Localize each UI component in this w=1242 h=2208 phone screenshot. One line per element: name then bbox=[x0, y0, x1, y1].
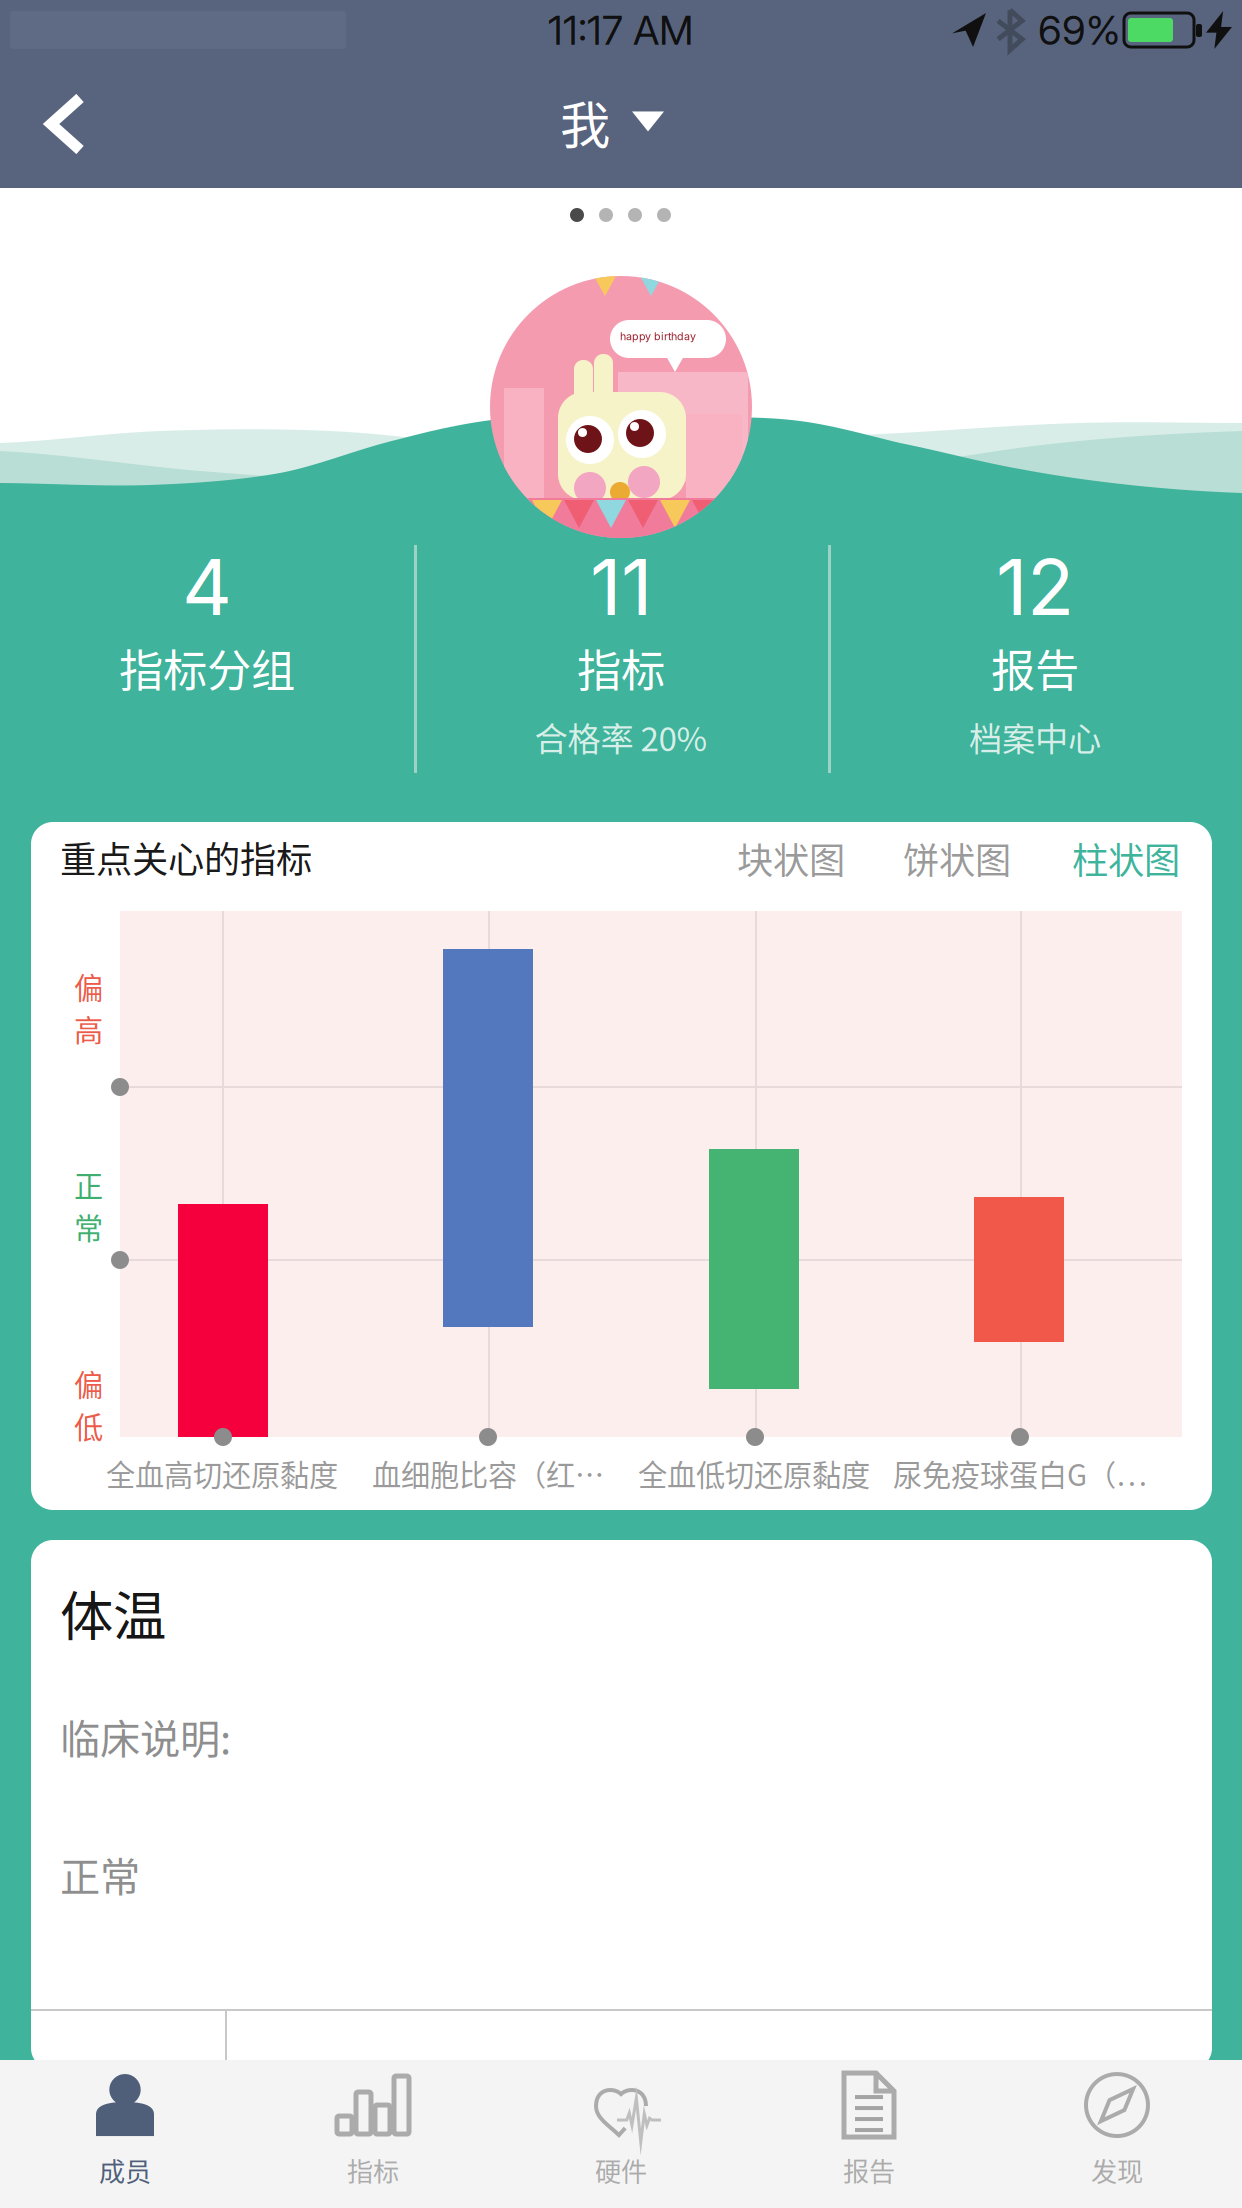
staticText: 全血高切还原黏度 bbox=[106, 1452, 338, 1494]
button[interactable]: 我 bbox=[544, 69, 680, 174]
staticText: 4 bbox=[182, 540, 232, 634]
staticText: 正 bbox=[74, 1163, 103, 1205]
button[interactable]: 成员 bbox=[1, 2068, 249, 2194]
staticText: 尿免疫球蛋白G（… bbox=[893, 1452, 1147, 1494]
staticText: 成员 bbox=[99, 2151, 151, 2189]
staticText: 正常 bbox=[60, 1845, 140, 1903]
staticText: 偏 bbox=[74, 1362, 103, 1404]
staticText: 我 bbox=[560, 85, 610, 158]
staticText: 常 bbox=[74, 1205, 103, 1248]
staticText: 发现 bbox=[1091, 2151, 1143, 2189]
staticText: 69% bbox=[1038, 6, 1120, 54]
button[interactable]: 柱状图 bbox=[1062, 822, 1190, 894]
staticText: 指标 bbox=[577, 636, 665, 700]
staticText: 临床说明: bbox=[60, 1707, 231, 1765]
button[interactable]: 硬件 bbox=[497, 2068, 745, 2194]
button[interactable]: 4 bbox=[0, 540, 414, 700]
staticText: 全血低切还原黏度 bbox=[638, 1452, 870, 1494]
staticText: 体温 bbox=[60, 1574, 166, 1651]
staticText: 11 bbox=[590, 540, 652, 634]
staticText: 饼状图 bbox=[903, 832, 1011, 884]
button[interactable]: 报告 bbox=[745, 2068, 993, 2194]
button[interactable]: 发现 bbox=[993, 2068, 1241, 2194]
button[interactable]: 11 bbox=[414, 540, 828, 761]
staticText: 档案中心 bbox=[969, 713, 1101, 761]
staticText: 指标 bbox=[347, 2151, 399, 2189]
staticText: 报告 bbox=[843, 2151, 895, 2189]
staticText: 高 bbox=[74, 1007, 103, 1050]
staticText: 硬件 bbox=[595, 2151, 647, 2189]
staticText: 报告 bbox=[991, 636, 1079, 700]
button[interactable]: 指标 bbox=[249, 2068, 497, 2194]
staticText: 12 bbox=[996, 540, 1074, 634]
staticText: 重点关心的指标 bbox=[60, 831, 312, 883]
button[interactable]: Back bbox=[8, 55, 123, 193]
staticText: 血细胞比容（红… bbox=[372, 1452, 604, 1494]
button[interactable]: 块状图 bbox=[727, 822, 855, 894]
staticText: 低 bbox=[74, 1404, 103, 1447]
button[interactable]: 饼状图 bbox=[893, 822, 1021, 894]
staticText: 块状图 bbox=[737, 832, 845, 884]
staticText: 合格率 20% bbox=[534, 713, 707, 761]
staticText: 11:17 AM bbox=[548, 6, 693, 54]
button[interactable]: 12 bbox=[828, 540, 1242, 761]
staticText: 偏 bbox=[74, 965, 103, 1007]
staticText: happy birthday bbox=[620, 330, 696, 343]
staticText: 指标分组 bbox=[119, 636, 295, 700]
staticText: 柱状图 bbox=[1072, 832, 1180, 884]
